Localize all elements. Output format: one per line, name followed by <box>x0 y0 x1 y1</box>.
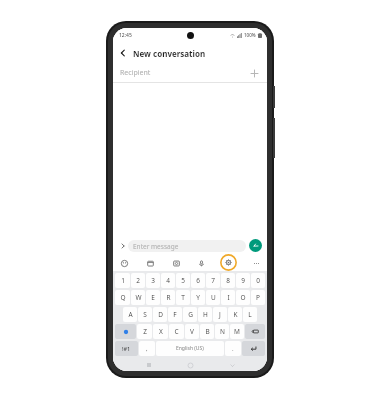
button[interactable]: Z <box>137 324 152 339</box>
button[interactable]: R <box>161 290 175 305</box>
button[interactable]: K <box>228 307 242 322</box>
staticText: !#1 <box>122 345 131 352</box>
button[interactable]: H <box>198 307 212 322</box>
button[interactable]: Enter <box>242 341 265 356</box>
button[interactable]: S <box>138 307 152 322</box>
button[interactable]: Gallery <box>143 256 157 270</box>
staticText: U <box>211 293 216 302</box>
button[interactable]: X <box>153 324 168 339</box>
button[interactable]: J <box>213 307 227 322</box>
button[interactable]: Back <box>226 359 238 371</box>
button[interactable]: 2 <box>131 273 145 288</box>
button[interactable]: F <box>168 307 182 322</box>
staticText: V <box>190 327 194 336</box>
staticText: English (US) <box>176 345 204 352</box>
staticText: T <box>181 293 185 302</box>
button[interactable]: T <box>176 290 190 305</box>
staticText: P <box>256 293 260 302</box>
staticText: A <box>128 310 133 319</box>
staticText: 100% <box>244 32 256 38</box>
button[interactable]: C <box>169 324 184 339</box>
staticText: 0 <box>256 276 260 285</box>
staticText: 12:45 <box>119 32 132 39</box>
button[interactable]: N <box>215 324 229 339</box>
button[interactable]: !#1 <box>115 341 138 356</box>
button[interactable]: M <box>230 324 244 339</box>
staticText: 7 <box>211 276 215 285</box>
staticText: F <box>173 310 177 319</box>
button[interactable]: Home <box>184 359 196 371</box>
staticText: New conversation <box>133 48 206 59</box>
button[interactable]: G <box>183 307 197 322</box>
staticText: X <box>159 327 163 336</box>
button[interactable]: Q <box>115 290 130 305</box>
button[interactable]: U <box>206 290 220 305</box>
staticText: 6 <box>196 276 200 285</box>
staticText: I <box>227 293 230 302</box>
button[interactable]: 5 <box>176 273 190 288</box>
staticText: D <box>158 310 163 319</box>
button[interactable]: Shift <box>115 324 136 339</box>
staticText: Y <box>196 293 200 302</box>
button[interactable]: Enter message <box>128 240 246 252</box>
button[interactable]: Space <box>156 341 224 356</box>
staticText: 5 <box>181 276 185 285</box>
staticText: L <box>248 310 252 319</box>
staticText: E <box>151 293 155 302</box>
staticText: N <box>220 327 225 336</box>
button[interactable]: 0 <box>251 273 265 288</box>
staticText: C <box>174 327 179 336</box>
button[interactable]: Recents <box>143 359 155 371</box>
button[interactable]: . <box>225 341 241 356</box>
staticText: , <box>146 345 148 353</box>
button[interactable]: Back <box>113 43 133 63</box>
button[interactable]: 8 <box>221 273 235 288</box>
staticText: 9 <box>241 276 245 285</box>
button[interactable]: Settings <box>220 254 237 271</box>
button[interactable]: W <box>131 290 145 305</box>
staticText: M <box>234 327 240 336</box>
button[interactable]: E <box>146 290 160 305</box>
staticText: Q <box>120 293 126 302</box>
staticText: S <box>143 310 147 319</box>
button[interactable]: L <box>243 307 257 322</box>
button[interactable]: B <box>200 324 214 339</box>
button[interactable]: V <box>185 324 199 339</box>
staticText: 3 <box>151 276 155 285</box>
button[interactable]: Add recipient <box>248 67 260 79</box>
button[interactable]: Camera <box>169 256 183 270</box>
button[interactable]: O <box>236 290 250 305</box>
button[interactable]: 7 <box>206 273 220 288</box>
staticText: K <box>233 310 238 319</box>
staticText: G <box>188 310 193 319</box>
button[interactable]: D <box>153 307 167 322</box>
button[interactable]: 4 <box>161 273 175 288</box>
button[interactable]: Send <box>249 239 262 252</box>
staticText: J <box>219 310 221 319</box>
staticText: Enter message <box>133 242 179 251</box>
button[interactable]: A <box>123 307 137 322</box>
button[interactable]: Voice <box>194 256 208 270</box>
button[interactable]: 9 <box>236 273 250 288</box>
button[interactable]: 3 <box>146 273 160 288</box>
staticText: 1 <box>121 276 125 285</box>
button[interactable]: Y <box>191 290 205 305</box>
button[interactable]: I <box>221 290 235 305</box>
button[interactable]: Expand <box>117 240 128 251</box>
staticText: B <box>205 327 210 336</box>
staticText: Z <box>143 327 147 336</box>
button[interactable]: Stickers <box>117 256 131 270</box>
staticText: 2 <box>136 276 140 285</box>
staticText: W <box>135 293 142 302</box>
button[interactable]: Backspace <box>245 324 265 339</box>
staticText: 8 <box>226 276 230 285</box>
staticText: . <box>232 345 234 353</box>
staticText: Recipient <box>120 68 248 78</box>
button[interactable]: More options <box>249 256 263 270</box>
staticText: H <box>203 310 208 319</box>
button[interactable]: 1 <box>115 273 130 288</box>
button[interactable]: 6 <box>191 273 205 288</box>
button[interactable]: P <box>251 290 265 305</box>
button[interactable]: , <box>139 341 155 356</box>
staticText: R <box>166 293 171 302</box>
